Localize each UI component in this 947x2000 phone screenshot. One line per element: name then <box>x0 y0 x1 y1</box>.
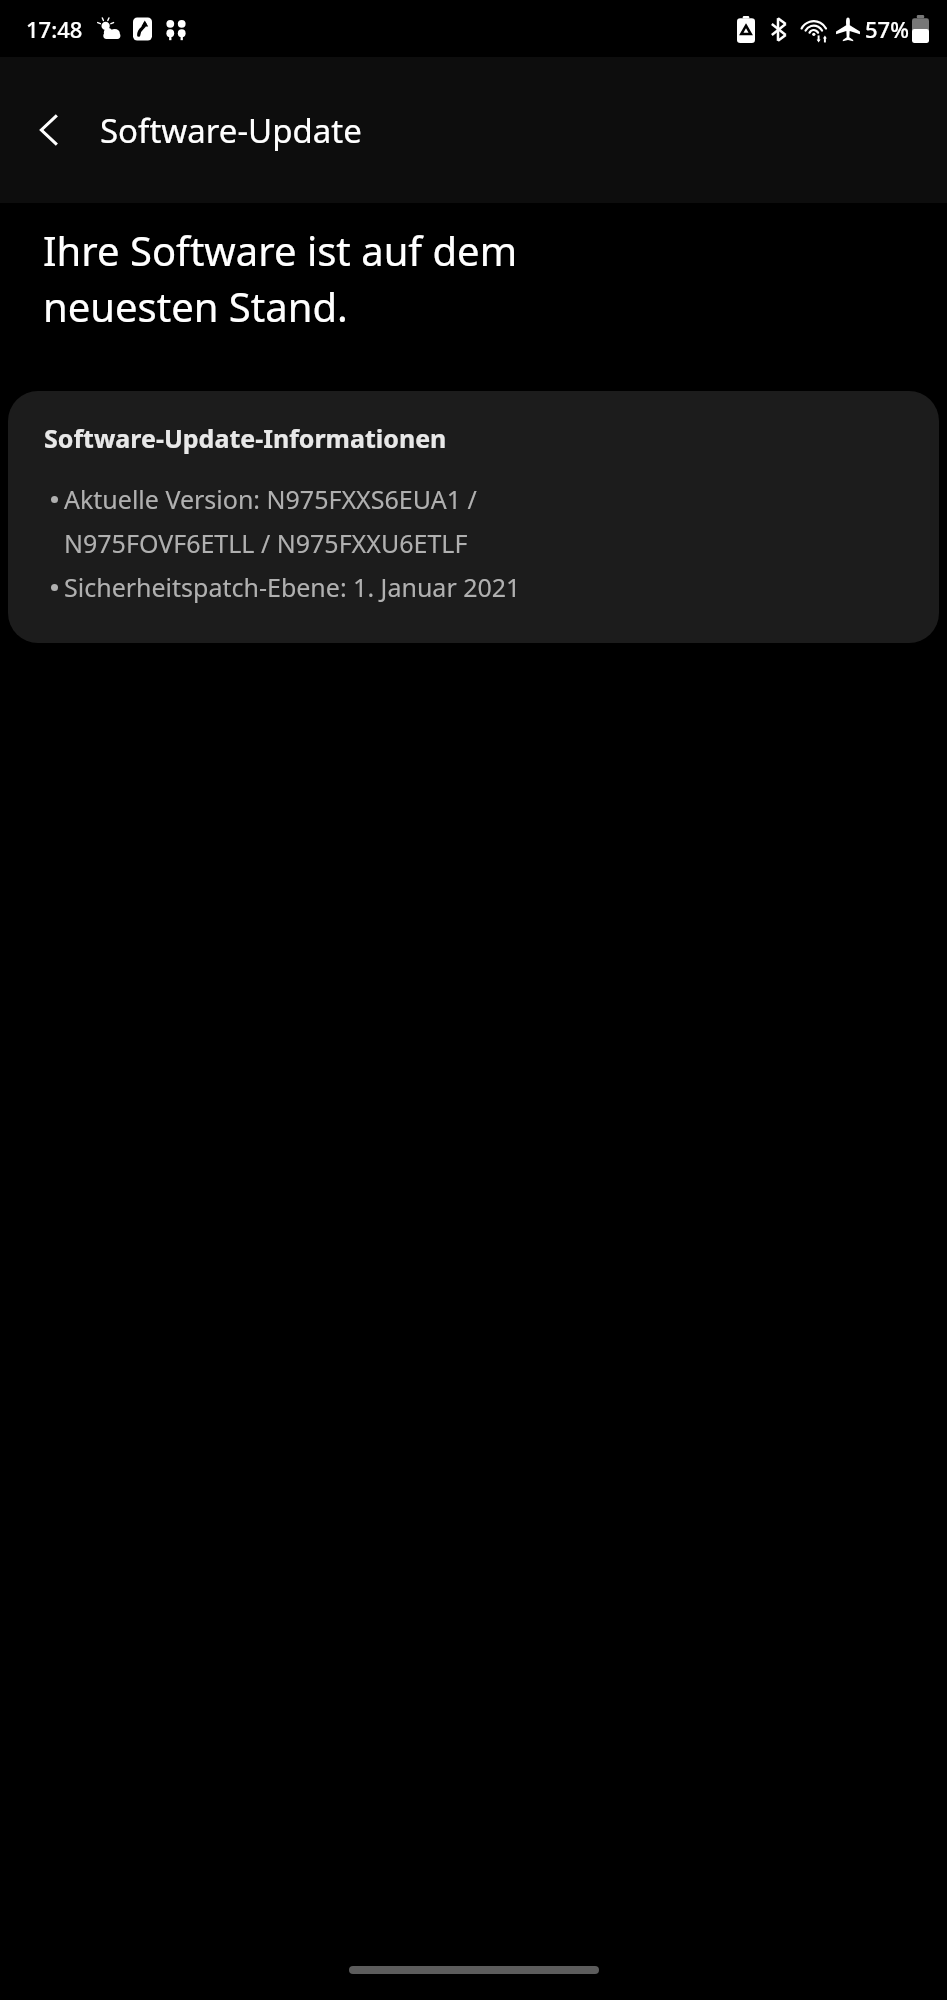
staticText: Software-Update <box>100 108 362 153</box>
staticText: 17:48 <box>26 14 83 44</box>
staticText: 57% <box>865 14 909 44</box>
button[interactable]: Software-Update-Informationen <box>8 391 939 643</box>
staticText: Aktuelle Version: N975FXXS6EUA1 / <box>64 482 477 516</box>
staticText: Ihre Software ist auf dem neuesten Stand… <box>43 223 518 334</box>
staticText: Software-Update-Informationen <box>44 421 447 455</box>
button[interactable]: Zurück <box>14 94 86 166</box>
staticText: Sicherheitspatch-Ebene: 1. Januar 2021 <box>64 570 521 604</box>
staticText: N975FOVF6ETLL / N975FXXU6ETLF <box>64 526 468 560</box>
